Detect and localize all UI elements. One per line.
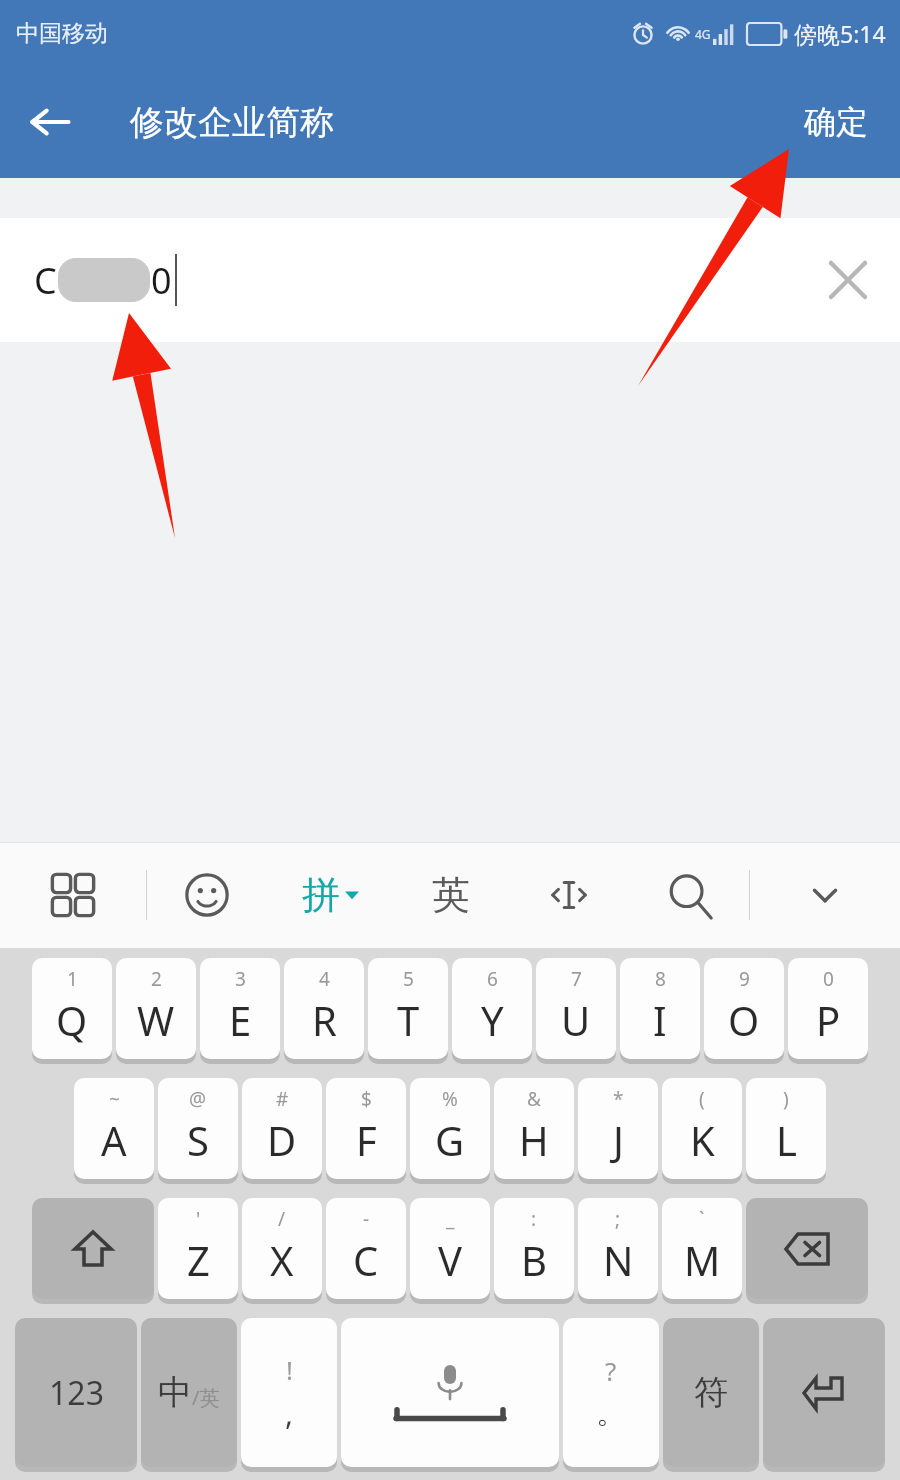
staticText: 中: [158, 1371, 192, 1414]
button[interactable]: 9: [704, 958, 784, 1059]
staticText: 1: [67, 966, 78, 992]
button[interactable]: Shift: [32, 1198, 154, 1299]
staticText: 123: [49, 1371, 104, 1415]
staticText: H: [519, 1113, 549, 1167]
button[interactable]: 符: [663, 1318, 759, 1467]
button[interactable]: 3: [200, 958, 280, 1059]
button[interactable]: _: [410, 1198, 490, 1299]
staticText: ~: [109, 1086, 120, 1112]
button[interactable]: &: [494, 1078, 574, 1179]
button[interactable]: 表情: [147, 842, 267, 948]
button[interactable]: ~: [74, 1078, 154, 1179]
staticText: X: [270, 1233, 294, 1287]
staticText: U: [561, 993, 591, 1047]
staticText: C: [34, 256, 57, 305]
staticText: Q: [56, 993, 88, 1047]
staticText: L: [776, 1113, 797, 1167]
staticText: ': [196, 1206, 201, 1232]
staticText: *: [613, 1086, 624, 1112]
button[interactable]: ?: [563, 1318, 659, 1467]
staticText: ,: [285, 1393, 294, 1434]
button[interactable]: 键盘布局: [0, 842, 146, 948]
button[interactable]: 返回: [18, 90, 82, 154]
button[interactable]: $: [326, 1078, 406, 1179]
staticText: 英: [432, 871, 470, 919]
staticText: 修改企业简称: [130, 101, 334, 144]
button[interactable]: -: [326, 1198, 406, 1299]
staticText: 。: [596, 1394, 626, 1432]
button[interactable]: @: [158, 1078, 238, 1179]
staticText: 7: [571, 966, 582, 992]
button[interactable]: 1: [32, 958, 112, 1059]
staticText: %: [442, 1086, 458, 1112]
staticText: 8: [655, 966, 666, 992]
staticText: /英: [192, 1384, 220, 1411]
button[interactable]: :: [494, 1198, 574, 1299]
button[interactable]: *: [578, 1078, 658, 1179]
staticText: Z: [187, 1233, 210, 1287]
staticText: F: [356, 1113, 377, 1167]
button[interactable]: 2: [116, 958, 196, 1059]
staticText: 4G: [695, 26, 711, 42]
staticText: 0: [823, 966, 834, 992]
button[interactable]: 删除: [746, 1198, 868, 1299]
button[interactable]: 拼: [267, 842, 393, 948]
button[interactable]: 7: [536, 958, 616, 1059]
staticText: K: [690, 1113, 715, 1167]
button[interactable]: !: [241, 1318, 337, 1467]
button[interactable]: 搜索: [629, 842, 749, 948]
button[interactable]: 5: [368, 958, 448, 1059]
button[interactable]: `: [662, 1198, 742, 1299]
staticText: M: [684, 1233, 721, 1287]
staticText: 6: [487, 966, 498, 992]
staticText: A: [101, 1113, 127, 1167]
staticText: V: [438, 1233, 462, 1287]
staticText: 傍晚5:14: [794, 18, 886, 49]
button[interactable]: #: [242, 1078, 322, 1179]
staticText: Y: [481, 993, 504, 1047]
button[interactable]: 123: [15, 1318, 137, 1467]
staticText: ): [783, 1086, 789, 1112]
staticText: J: [613, 1113, 624, 1167]
button[interactable]: 0: [788, 958, 868, 1059]
button[interactable]: /: [242, 1198, 322, 1299]
button[interactable]: ;: [578, 1198, 658, 1299]
button[interactable]: C: [0, 218, 900, 342]
staticText: S: [187, 1113, 209, 1167]
staticText: 0: [151, 256, 172, 305]
staticText: P: [816, 993, 841, 1047]
staticText: #: [276, 1086, 289, 1112]
staticText: :: [531, 1206, 537, 1232]
staticText: E: [229, 993, 252, 1047]
staticText: 中国移动: [16, 19, 108, 48]
staticText: /: [278, 1206, 286, 1232]
button[interactable]: ': [158, 1198, 238, 1299]
staticText: `: [699, 1206, 705, 1232]
staticText: O: [728, 993, 760, 1047]
staticText: $: [361, 1086, 372, 1112]
button[interactable]: 清除: [818, 250, 878, 310]
staticText: 2: [151, 966, 162, 992]
button[interactable]: 英: [393, 842, 509, 948]
button[interactable]: 回车: [763, 1318, 885, 1467]
button[interactable]: 收起键盘: [750, 842, 900, 948]
button[interactable]: 中: [141, 1318, 237, 1467]
button[interactable]: 空格: [341, 1318, 559, 1467]
staticText: -: [363, 1206, 370, 1232]
button[interactable]: 8: [620, 958, 700, 1059]
staticText: ;: [615, 1206, 621, 1232]
staticText: B: [521, 1233, 547, 1287]
staticText: T: [397, 993, 420, 1047]
staticText: ?: [605, 1353, 617, 1388]
staticText: (: [699, 1086, 705, 1112]
button[interactable]: 光标移动: [509, 842, 629, 948]
staticText: @: [189, 1086, 207, 1112]
button[interactable]: ): [746, 1078, 826, 1179]
button[interactable]: 确定: [794, 94, 878, 150]
staticText: 确定: [804, 102, 868, 142]
button[interactable]: (: [662, 1078, 742, 1179]
button[interactable]: %: [410, 1078, 490, 1179]
staticText: 3: [235, 966, 246, 992]
button[interactable]: 4: [284, 958, 364, 1059]
button[interactable]: 6: [452, 958, 532, 1059]
